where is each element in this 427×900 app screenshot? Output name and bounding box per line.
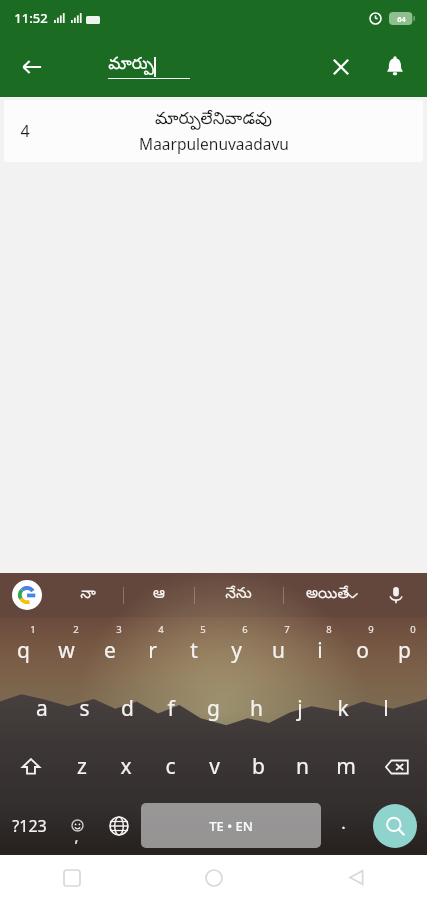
button[interactable]: మార్పు xyxy=(94,36,204,97)
button[interactable]: అయితే xyxy=(283,573,372,617)
button[interactable]: t xyxy=(173,621,215,679)
button[interactable]: Shift xyxy=(2,737,60,796)
staticText: 11:52 xyxy=(14,9,48,27)
staticText: . xyxy=(341,811,346,834)
staticText: 0 xyxy=(410,623,416,636)
button[interactable]: నేను xyxy=(194,573,283,617)
staticText: అయితే xyxy=(306,585,349,605)
button[interactable]: Notifications xyxy=(371,43,419,91)
staticText: 9 xyxy=(368,623,374,636)
button[interactable]: Recent apps xyxy=(0,855,143,900)
staticText: x xyxy=(120,752,132,781)
button[interactable]: Back xyxy=(285,855,427,900)
button[interactable]: q xyxy=(2,621,45,679)
button[interactable]: o xyxy=(341,621,383,679)
button[interactable]: h xyxy=(235,679,278,737)
button[interactable]: More suggestions xyxy=(335,578,369,612)
staticText: ?123 xyxy=(12,815,47,837)
staticText: g xyxy=(207,694,220,723)
staticText: z xyxy=(77,752,87,781)
staticText: e xyxy=(104,636,116,665)
staticText: 6 xyxy=(242,623,248,636)
button[interactable]: u xyxy=(257,621,299,679)
button[interactable]: k xyxy=(321,679,364,737)
staticText: i xyxy=(317,636,323,665)
button[interactable]: Backspace xyxy=(368,737,425,796)
staticText: 8 xyxy=(326,623,332,636)
staticText: TE • EN xyxy=(209,817,253,835)
staticText: w xyxy=(58,636,75,665)
staticText: 2 xyxy=(73,623,79,636)
button[interactable]: p xyxy=(383,621,425,679)
button[interactable]: e xyxy=(88,621,131,679)
button[interactable]: Voice input xyxy=(379,578,413,612)
staticText: q xyxy=(17,636,30,665)
staticText: d xyxy=(121,694,134,723)
staticText: 4 xyxy=(20,120,30,142)
staticText: ఆ xyxy=(153,585,165,605)
staticText: నేను xyxy=(225,585,252,605)
staticText: నా xyxy=(80,585,96,605)
staticText: n xyxy=(296,752,309,781)
staticText: y xyxy=(231,636,242,665)
staticText: v xyxy=(209,752,220,781)
staticText: , xyxy=(74,826,79,846)
staticText: t xyxy=(190,636,198,665)
button[interactable]: Home xyxy=(143,855,285,900)
button[interactable]: y xyxy=(215,621,257,679)
button[interactable]: b xyxy=(236,737,280,796)
staticText: మార్పులేనివాడవు xyxy=(155,109,272,132)
staticText: c xyxy=(165,752,176,781)
button[interactable]: j xyxy=(278,679,321,737)
staticText: 5 xyxy=(200,623,206,636)
button[interactable]: ఆ xyxy=(123,573,194,617)
button[interactable]: Google xyxy=(12,580,42,610)
staticText: o xyxy=(356,636,369,665)
staticText: 7 xyxy=(284,623,290,636)
button[interactable]: v xyxy=(192,737,236,796)
staticText: b xyxy=(252,752,265,781)
staticText: Maarpulenuvaadavu xyxy=(139,133,289,154)
button[interactable]: x xyxy=(104,737,148,796)
staticText: u xyxy=(272,636,285,665)
button[interactable]: 4 xyxy=(4,100,423,162)
staticText: 1 xyxy=(30,623,36,636)
button[interactable]: a xyxy=(20,679,63,737)
staticText: మార్పు xyxy=(108,54,154,77)
button[interactable]: g xyxy=(192,679,235,737)
button[interactable]: n xyxy=(280,737,324,796)
staticText: a xyxy=(36,694,48,723)
button[interactable]: l xyxy=(364,679,407,737)
staticText: l xyxy=(383,694,389,723)
button[interactable]: r xyxy=(131,621,173,679)
button[interactable]: f xyxy=(149,679,192,737)
staticText: 4 xyxy=(158,623,164,636)
button[interactable]: Clear xyxy=(317,43,365,91)
button[interactable]: i xyxy=(299,621,341,679)
button[interactable]: TE • EN xyxy=(141,803,321,848)
button[interactable]: z xyxy=(60,737,104,796)
button[interactable]: d xyxy=(106,679,149,737)
button[interactable]: s xyxy=(63,679,106,737)
button[interactable]: m xyxy=(324,737,368,796)
staticText: 64 xyxy=(397,14,406,24)
staticText: k xyxy=(337,694,349,723)
button[interactable]: . xyxy=(321,796,365,855)
staticText: h xyxy=(250,694,263,723)
button[interactable]: ?123 xyxy=(2,796,57,855)
staticText: r xyxy=(148,636,157,665)
button[interactable]: c xyxy=(148,737,192,796)
staticText: p xyxy=(398,636,411,665)
button[interactable]: Emoji xyxy=(57,796,97,855)
staticText: s xyxy=(79,694,90,723)
staticText: j xyxy=(297,694,303,723)
staticText: m xyxy=(336,752,356,781)
staticText: f xyxy=(167,694,175,723)
staticText: 3 xyxy=(116,623,122,636)
button[interactable]: Back xyxy=(8,43,56,91)
button[interactable]: w xyxy=(45,621,88,679)
button[interactable]: నా xyxy=(52,573,123,617)
button[interactable]: Search xyxy=(373,804,417,848)
button[interactable]: Change language xyxy=(97,796,141,855)
